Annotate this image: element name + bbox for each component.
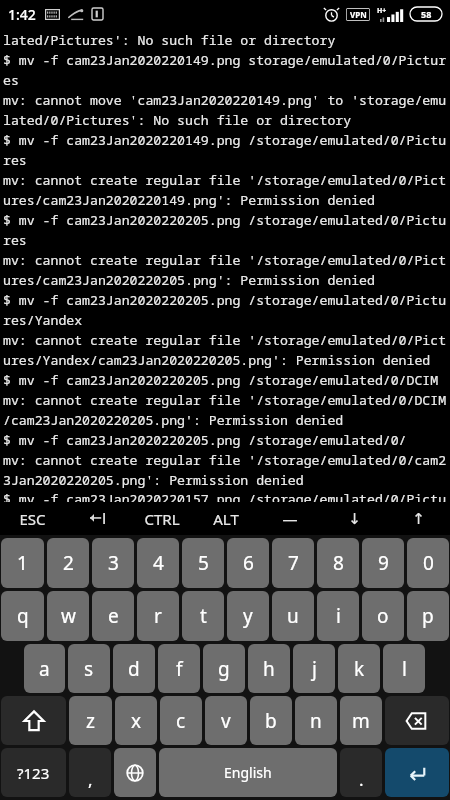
staticText: 58 [421,8,432,20]
button[interactable]: English [159,748,337,797]
staticText: s [84,656,94,682]
button[interactable]: v [205,696,247,745]
button[interactable]: 2 [47,538,89,588]
button[interactable]: e [92,591,134,641]
staticText: res/Yandex [3,311,83,329]
staticText: n [310,708,322,734]
button[interactable]: z [69,696,112,745]
staticText: 5 [198,550,209,576]
button[interactable]: g [203,644,245,693]
staticText: $ mv -f cam23Jan2020220157.png /storage/… [3,490,447,502]
staticText: 7 [288,550,299,576]
staticText: g [218,656,230,682]
staticText: ↑ [412,510,425,527]
button[interactable]: u [272,591,314,641]
staticText: t [200,603,207,629]
button[interactable]: . [340,748,382,797]
staticText: z [86,708,95,734]
staticText: $ mv -f cam23Jan2020220149.png /storage/… [3,131,447,149]
staticText: es [3,71,19,89]
button[interactable]: ↑ [386,502,450,535]
staticText: ↓ [348,510,361,527]
button[interactable]: k [338,644,380,693]
button[interactable]: Enter [385,748,449,797]
staticText: ures/cam23Jan2020220205.png': Permission… [3,271,375,289]
button[interactable]: w [47,591,89,641]
button[interactable]: r [137,591,179,641]
staticText: . [359,768,364,791]
button[interactable]: f [158,644,200,693]
button[interactable]: 0 [407,538,449,588]
staticText: 4 [153,550,164,576]
button[interactable]: s [68,644,110,693]
button[interactable]: o [362,591,404,641]
staticText: ALT [213,509,239,529]
button[interactable]: j [293,644,335,693]
staticText: v [221,708,231,734]
staticText: o [377,603,389,629]
button[interactable]: t [182,591,224,641]
button[interactable]: ESC [0,502,65,535]
button[interactable]: l [383,644,425,693]
button[interactable]: c [160,696,202,745]
button[interactable]: 3 [92,538,134,588]
staticText: l [402,656,407,682]
button[interactable]: ALT [194,502,258,535]
button[interactable]: — [258,502,322,535]
staticText: 6 [243,550,254,576]
button[interactable]: i [317,591,359,641]
staticText: $ mv -f cam23Jan2020220205.png /storage/… [3,291,447,309]
button[interactable]: 9 [362,538,404,588]
staticText: y [243,603,253,629]
button[interactable]: b [250,696,292,745]
staticText: 3 [108,550,119,576]
button[interactable]: p [407,591,449,641]
button[interactable]: 8 [317,538,359,588]
button[interactable]: q [1,591,44,641]
button[interactable]: 7 [272,538,314,588]
staticText: u [287,603,299,629]
button[interactable]: , [69,748,111,797]
button[interactable]: 4 [137,538,179,588]
staticText: r [154,603,162,629]
staticText: mv: cannot create regular file '/storage… [3,171,447,189]
staticText: p [422,603,434,629]
staticText: e [108,603,119,629]
button[interactable]: Backspace [385,696,449,745]
button[interactable]: Tab [65,502,130,535]
button[interactable]: ↓ [322,502,386,535]
staticText: , [88,768,93,791]
button[interactable]: h [248,644,290,693]
staticText: mv: cannot create regular file '/storage… [3,451,447,469]
button[interactable]: Shift [1,696,66,745]
staticText: res [3,231,27,249]
staticText: ESC [19,509,46,529]
staticText: c [176,708,186,734]
button[interactable]: d [113,644,155,693]
button[interactable]: y [227,591,269,641]
staticText: $ mv -f cam23Jan2020220205.png /storage/… [3,431,407,449]
staticText: $ mv -f cam23Jan2020220205.png /storage/… [3,371,439,389]
staticText: 1 [17,550,28,576]
button[interactable]: m [340,696,382,745]
button[interactable]: a [24,644,65,693]
staticText: 0 [423,550,434,576]
staticText: i [336,603,341,629]
button[interactable]: 6 [227,538,269,588]
staticText: $ mv -f cam23Jan2020220149.png storage/e… [3,51,447,69]
button[interactable]: x [115,696,157,745]
staticText: w [61,603,76,629]
staticText: 2 [63,550,74,576]
staticText: ures/cam23Jan2020220149.png': Permission… [3,191,375,209]
staticText: k [354,656,365,682]
button[interactable]: Change language [114,748,156,797]
button[interactable]: CTRL [130,502,194,535]
staticText: $ mv -f cam23Jan2020220205.png /storage/… [3,211,447,229]
button[interactable]: n [295,696,337,745]
staticText: b [265,708,277,734]
button[interactable]: 5 [182,538,224,588]
button[interactable]: 1 [1,538,44,588]
staticText: j [312,656,317,682]
staticText: h [263,656,275,682]
button[interactable]: ?123 [1,748,66,797]
